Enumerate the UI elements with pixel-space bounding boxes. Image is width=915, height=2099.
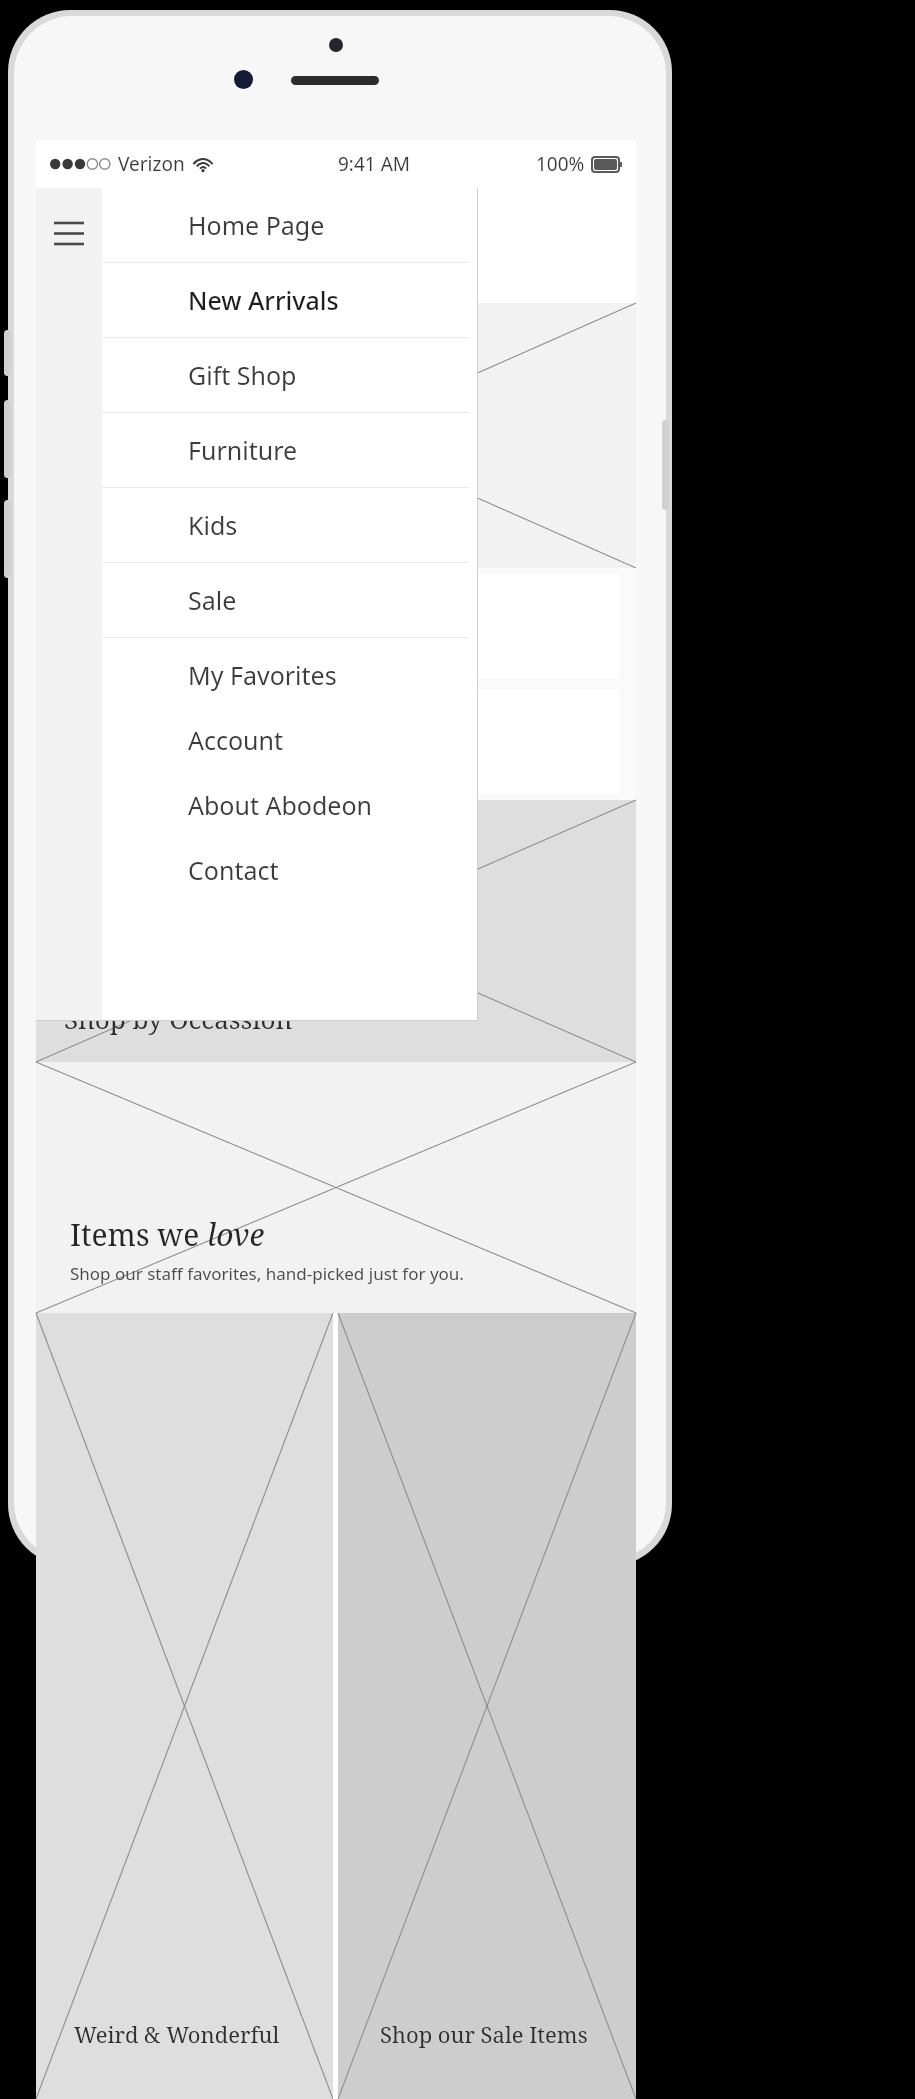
button[interactable]: More [52, 690, 620, 794]
button[interactable]: Items we love [36, 1062, 636, 1313]
button[interactable]: Kids [102, 488, 477, 562]
button[interactable]: Shop our Sale Items [338, 1313, 636, 2099]
staticText: Sale [188, 583, 237, 617]
staticText: Verizon [118, 151, 185, 177]
staticText: Weird & Wonderful [74, 2019, 280, 2049]
staticText: Account [188, 723, 284, 757]
button[interactable]: Home Page [102, 188, 477, 262]
staticText: Items we love [70, 1214, 265, 1255]
staticText: 9:41 AM [338, 151, 411, 177]
staticText: My Favorites [188, 658, 337, 692]
staticText: Kids [188, 508, 238, 542]
staticText: Shop our Sale Items [380, 2019, 588, 2049]
staticText: About Abodeon [188, 788, 372, 822]
staticText: A curated collection of modern home good… [36, 303, 266, 363]
button[interactable]: A curated collection of modern home good… [36, 303, 636, 568]
staticText: Shop by Occassion [64, 1001, 293, 1036]
staticText: New Arrivals [188, 283, 339, 317]
button[interactable]: About Abodeon [102, 772, 477, 837]
button[interactable]: Close menu [46, 210, 92, 256]
button[interactable]: Contact [102, 837, 477, 902]
button[interactable]: New Arrivals [102, 263, 477, 337]
staticText: Home Page [188, 208, 325, 242]
button[interactable]: Shop by Occassion [36, 800, 636, 1062]
button[interactable]: Furniture [102, 413, 477, 487]
staticText: Shop our staff favorites, hand-picked ju… [70, 1262, 464, 1285]
staticText: 100% [536, 151, 585, 177]
staticText: Contact [188, 853, 279, 887]
button[interactable]: Account [102, 707, 477, 772]
button[interactable]: Weird & Wonderful [36, 1313, 333, 2099]
button[interactable]: My Favorites [102, 642, 477, 707]
staticText: Gift Shop [188, 358, 297, 392]
button[interactable]: Sale [102, 563, 477, 637]
button[interactable]: Jewelry [52, 574, 620, 678]
button[interactable]: Gift Shop [102, 338, 477, 412]
staticText: Furniture [188, 433, 298, 467]
staticText: Abodeon [281, 228, 392, 263]
